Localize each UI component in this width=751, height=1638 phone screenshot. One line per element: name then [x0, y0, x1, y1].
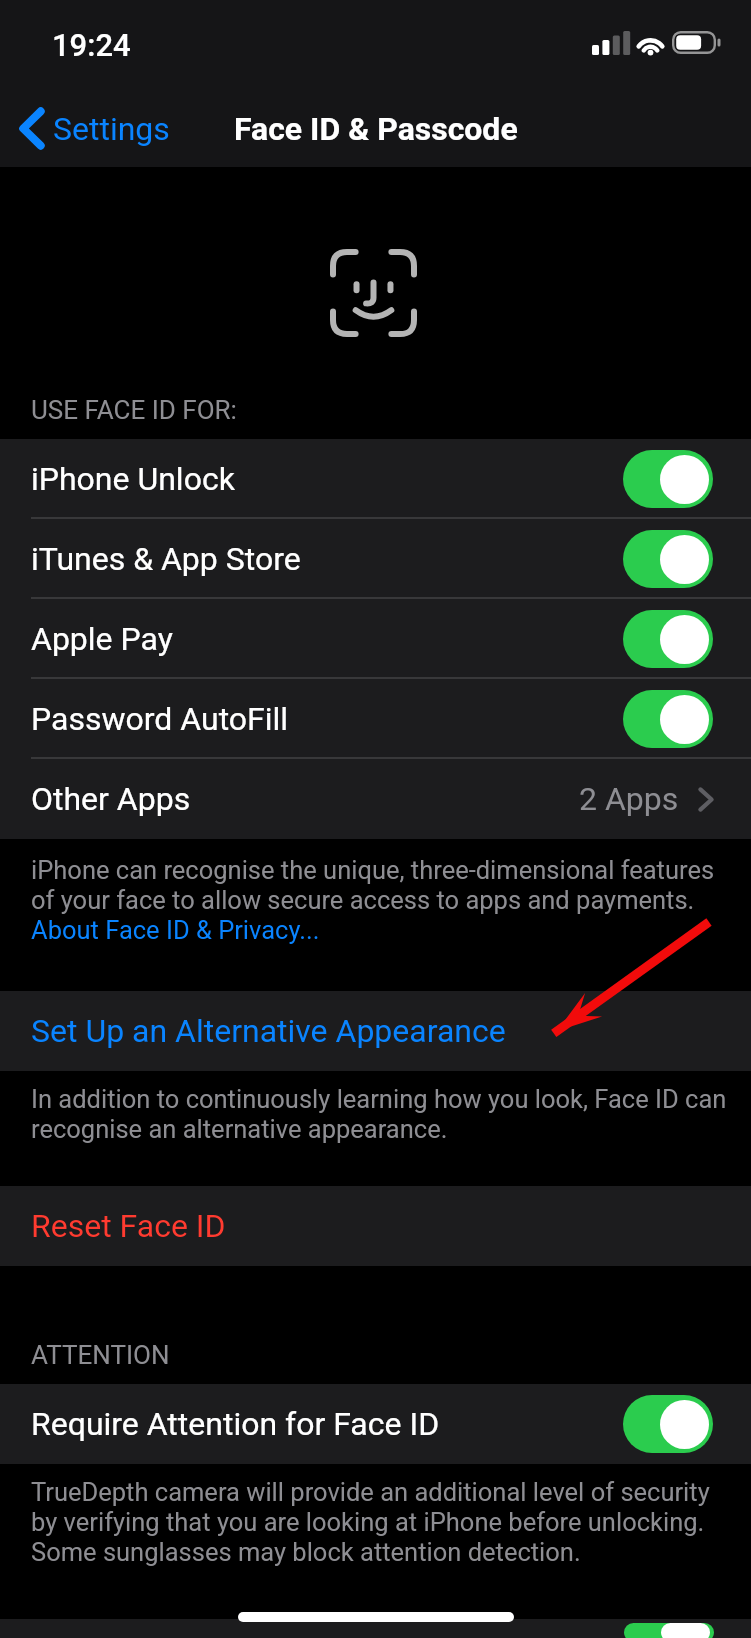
- button: Some sunglasses may block attention dete…: [31, 1537, 581, 1567]
- button[interactable]: iPhone Unlock: [0, 439, 751, 519]
- button[interactable]: iTunes & App Store: [0, 519, 751, 599]
- button[interactable]: Apple Pay: [0, 599, 751, 679]
- other: Toggle: [623, 450, 713, 508]
- other: Wi-Fi: [634, 30, 667, 55]
- other: Toggle: [623, 530, 713, 588]
- button: iPhone can recognise the unique, three-d…: [31, 855, 715, 885]
- button: recognise an alternative appearance.: [31, 1114, 448, 1144]
- other: Cellular signal: [592, 31, 627, 55]
- staticText: 19:24: [52, 27, 131, 63]
- button[interactable]: Require Attention for Face ID: [0, 1384, 751, 1464]
- staticText: iTunes & App Store: [31, 540, 623, 578]
- button[interactable]: Password AutoFill: [0, 679, 751, 759]
- other: Back: [20, 109, 43, 148]
- other: Toggle: [623, 690, 713, 748]
- staticText: Other Apps: [31, 780, 579, 818]
- staticText: 2 Apps: [579, 780, 679, 818]
- staticText: Reset Face ID: [31, 1207, 226, 1245]
- button: TrueDepth camera will provide an additio…: [31, 1477, 710, 1507]
- staticText: Apple Pay: [31, 620, 623, 658]
- button: In addition to continuously learning how…: [31, 1084, 727, 1114]
- other: Battery: [672, 31, 723, 55]
- staticText: ATTENTION: [31, 1340, 170, 1370]
- staticText: iPhone Unlock: [31, 460, 623, 498]
- staticText: Settings: [53, 110, 170, 148]
- staticText: Password AutoFill: [31, 700, 623, 738]
- staticText: Face ID & Passcode: [234, 110, 518, 148]
- other: Toggle: [623, 1395, 713, 1453]
- button[interactable]: About Face ID & Privacy...: [31, 915, 320, 945]
- button[interactable]: Reset Face ID: [0, 1186, 751, 1266]
- button[interactable]: Set Up an Alternative Appearance: [0, 991, 751, 1071]
- button: of your face to allow secure access to a…: [31, 885, 695, 915]
- staticText: Require Attention for Face ID: [31, 1405, 623, 1443]
- staticText: Set Up an Alternative Appearance: [31, 1012, 506, 1050]
- button[interactable]: Other Apps: [0, 759, 751, 839]
- button: by verifying that you are looking at iPh…: [31, 1507, 705, 1537]
- button[interactable]: Back: [0, 109, 182, 148]
- other: Toggle: [623, 610, 713, 668]
- staticText: USE FACE ID FOR:: [31, 395, 237, 425]
